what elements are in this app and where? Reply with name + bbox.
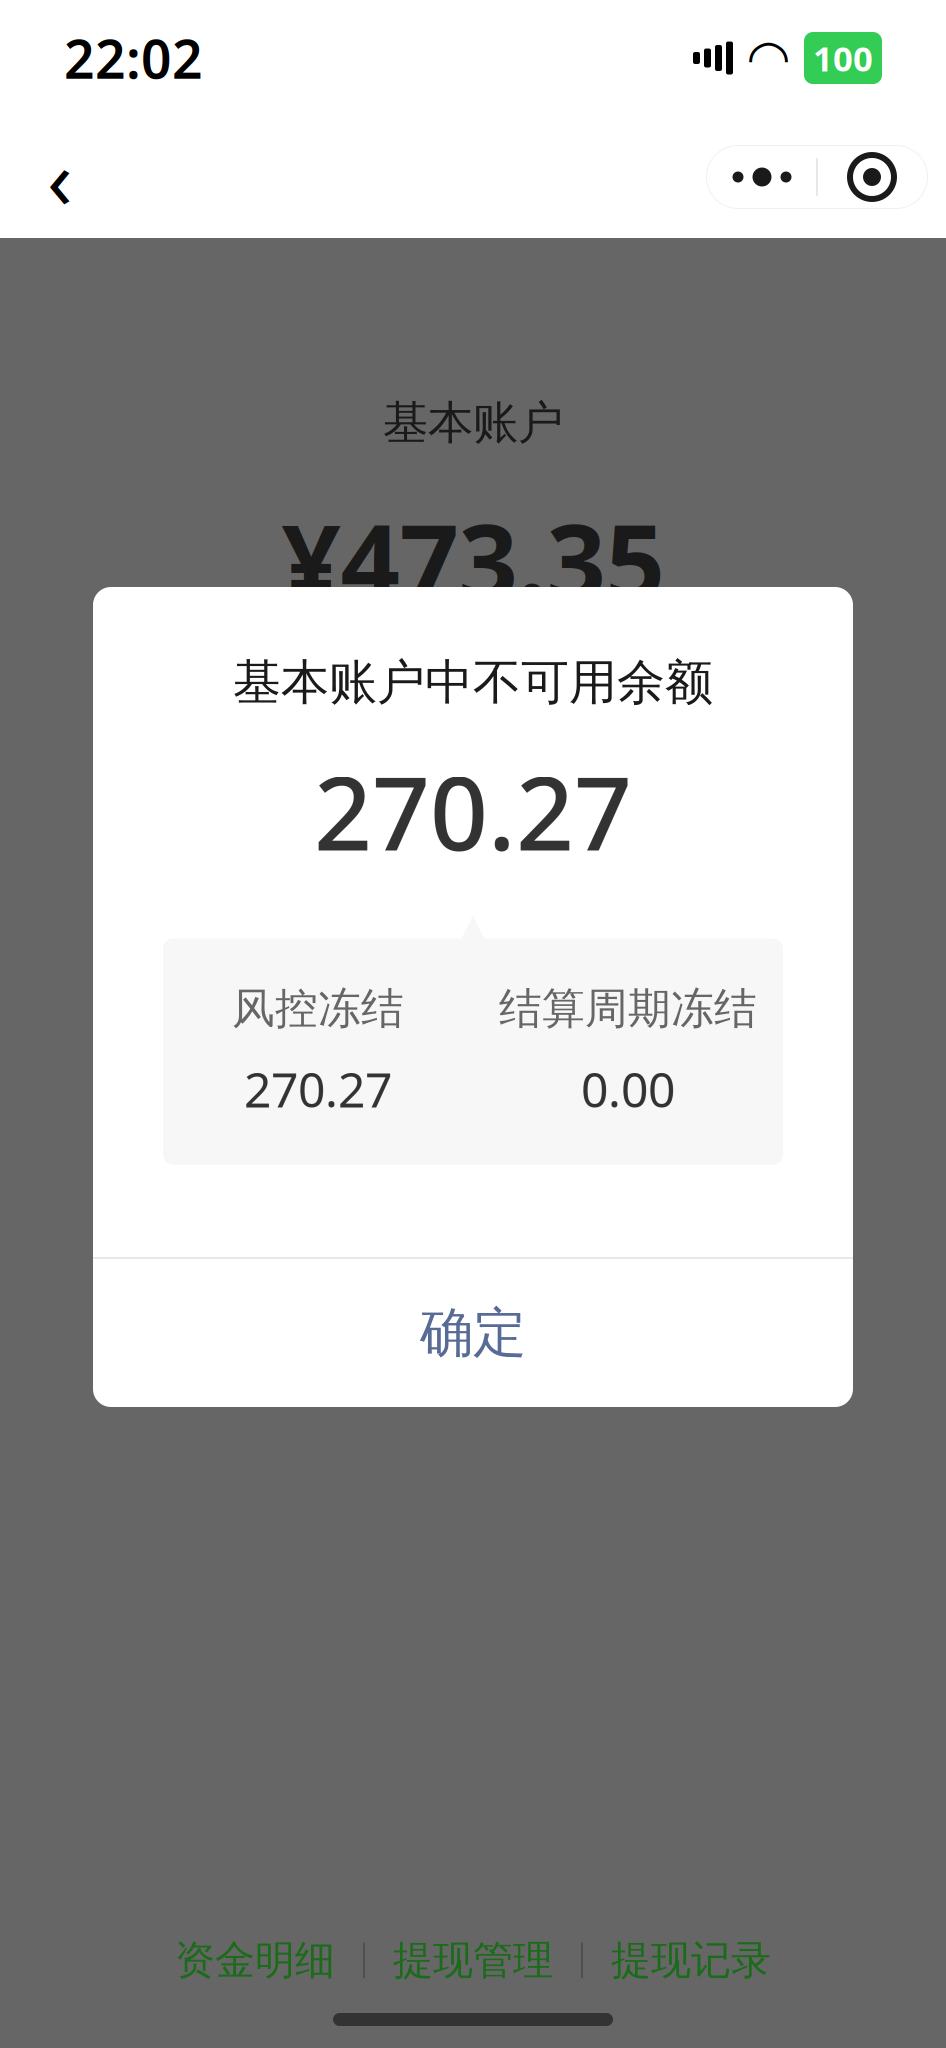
staticText: 270.27 <box>314 744 632 879</box>
staticText: ¥473.35 <box>281 491 664 629</box>
button[interactable]: 提现管理 <box>365 1928 581 1993</box>
staticText: ‹ <box>47 122 73 232</box>
staticText: ▲ <box>457 905 488 950</box>
staticText: 提现记录 <box>611 1936 771 1985</box>
staticText: ◠ <box>749 29 788 87</box>
staticText: 风控冻结 <box>232 982 404 1035</box>
staticText: 确定 <box>420 1300 526 1366</box>
button[interactable]: 资金明细 <box>147 1928 363 1993</box>
staticText: 基本账户中不可用余额 <box>233 653 713 712</box>
staticText: 提现管理 <box>393 1936 553 1985</box>
button[interactable]: 提现记录 <box>583 1928 799 1993</box>
staticText: 资金明细 <box>175 1936 335 1985</box>
button[interactable]: Back <box>18 135 102 219</box>
staticText: 270.27 <box>244 1057 392 1121</box>
staticText: 结算周期冻结 <box>499 982 757 1035</box>
button[interactable]: More <box>708 146 816 208</box>
staticText: 100 <box>813 35 873 81</box>
staticText: 基本账户 <box>383 395 563 451</box>
button[interactable]: 确定 <box>93 1259 853 1407</box>
button[interactable]: Close mini program <box>818 146 926 208</box>
staticText: 0.00 <box>581 1057 675 1121</box>
staticText: 22:02 <box>64 23 203 93</box>
